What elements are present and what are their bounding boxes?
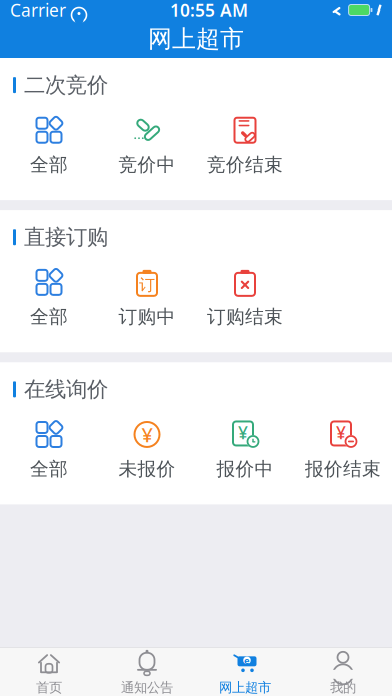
staticText: 10:55 AM xyxy=(170,0,248,21)
button[interactable]: ¥ xyxy=(98,414,196,484)
staticText: 全部 xyxy=(30,305,68,328)
staticText: 全部 xyxy=(30,457,68,480)
staticText: 首页 xyxy=(36,679,62,696)
staticText: 二次竞价 xyxy=(24,72,108,98)
button[interactable]: ¥ xyxy=(196,414,294,484)
staticText: 全部 xyxy=(30,153,68,176)
button[interactable]: 竞价中 xyxy=(98,110,196,180)
staticText: 我的 xyxy=(330,679,356,696)
staticText: 通知公告 xyxy=(121,679,173,696)
button[interactable]: ¥ xyxy=(294,414,392,484)
button[interactable]: 订购结束 xyxy=(196,262,294,332)
button[interactable]: 我的 xyxy=(294,645,392,696)
staticText: 订购结束 xyxy=(207,305,283,328)
staticText: 网上超市 xyxy=(148,24,244,54)
staticText: 直接订购 xyxy=(24,224,108,250)
staticText: ¥ xyxy=(336,421,346,444)
button[interactable]: 首页 xyxy=(0,645,98,696)
button[interactable]: 通知公告 xyxy=(98,645,196,696)
button[interactable]: 全部 xyxy=(0,110,98,180)
button[interactable]: 全部 xyxy=(0,414,98,484)
button[interactable]: e xyxy=(196,645,294,696)
button[interactable]: 全部 xyxy=(0,262,98,332)
staticText: 竞价中 xyxy=(118,153,175,176)
staticText: ¥ xyxy=(141,421,152,448)
staticText: ¥ xyxy=(238,421,248,444)
staticText: 订购中 xyxy=(118,305,175,328)
staticText: e xyxy=(244,654,250,666)
staticText: 报价中 xyxy=(216,457,273,480)
button[interactable]: 竞价结束 xyxy=(196,110,294,180)
staticText: 在线询价 xyxy=(24,376,108,402)
staticText: 未报价 xyxy=(118,457,175,480)
staticText: 竞价结束 xyxy=(207,153,283,176)
staticText: 报价结束 xyxy=(305,457,381,480)
staticText: Carrier xyxy=(10,0,66,21)
button[interactable]: 订 xyxy=(98,262,196,332)
staticText: 订 xyxy=(139,275,155,295)
staticText: 网上超市 xyxy=(219,679,271,696)
